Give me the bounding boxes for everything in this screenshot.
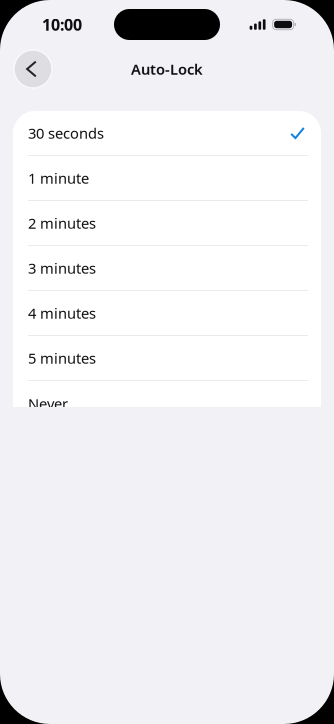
button[interactable]: Never bbox=[13, 381, 321, 426]
staticText: 4 minutes bbox=[28, 303, 96, 323]
staticText: 2 minutes bbox=[28, 213, 96, 233]
staticText: 10:00 bbox=[42, 14, 82, 35]
staticText: 1 minute bbox=[28, 168, 89, 188]
button[interactable]: 4 minutes bbox=[13, 291, 321, 336]
staticText: 3 minutes bbox=[28, 258, 96, 278]
staticText: 5 minutes bbox=[28, 348, 96, 368]
button[interactable]: Back bbox=[14, 50, 52, 88]
button[interactable]: 5 minutes bbox=[13, 336, 321, 381]
button[interactable]: 1 minute bbox=[13, 156, 321, 201]
button[interactable]: 2 minutes bbox=[13, 201, 321, 246]
staticText: 30 seconds bbox=[28, 123, 104, 143]
button[interactable]: 30 seconds bbox=[13, 111, 321, 156]
button[interactable]: 3 minutes bbox=[13, 246, 321, 291]
staticText: Never bbox=[28, 394, 68, 413]
staticText: Auto-Lock bbox=[131, 59, 203, 79]
